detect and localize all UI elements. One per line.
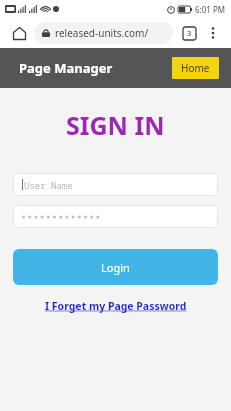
staticText: released-units.com/land xyxy=(55,26,165,40)
staticText: 6:01 PM xyxy=(195,4,226,15)
button[interactable]: Home xyxy=(172,57,219,79)
button[interactable]: More options xyxy=(203,23,223,43)
staticText: User Name xyxy=(24,179,73,191)
button[interactable]: Tabs, 3 open xyxy=(179,23,199,43)
staticText: Login xyxy=(101,260,130,275)
button[interactable]: Login xyxy=(13,249,218,285)
button[interactable] xyxy=(13,205,218,228)
button[interactable]: Home xyxy=(8,22,30,44)
button[interactable]: released-units.com/land xyxy=(34,22,173,44)
staticText: Page Manager xyxy=(19,59,113,77)
staticText: I Forget my Page Password xyxy=(45,299,187,313)
staticText: Home xyxy=(181,61,210,75)
staticText: 3 xyxy=(187,28,192,38)
staticText: SIGN IN xyxy=(66,108,165,142)
button[interactable]: I Forget my Page Password xyxy=(41,297,191,315)
button[interactable]: User Name xyxy=(13,173,218,196)
